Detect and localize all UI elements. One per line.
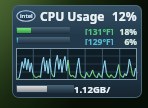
button[interactable]: 1.12GB/1.99GB [16, 83, 137, 94]
staticText: 6% [117, 36, 137, 45]
staticText: 1.12GB/1.99GB [74, 83, 137, 94]
button[interactable]: Intel [16, 8, 137, 24]
staticText: CPU Usage [40, 8, 105, 24]
other: Intel [16, 10, 36, 22]
staticText: [129°F] [85, 36, 114, 45]
staticText: intel [20, 12, 33, 20]
staticText: 12% [112, 8, 137, 24]
staticText: 18% [117, 26, 137, 35]
button[interactable]: Intel [12, 5, 142, 98]
staticText: [131°F] [85, 26, 114, 35]
other: CPU history graph [16, 48, 137, 80]
